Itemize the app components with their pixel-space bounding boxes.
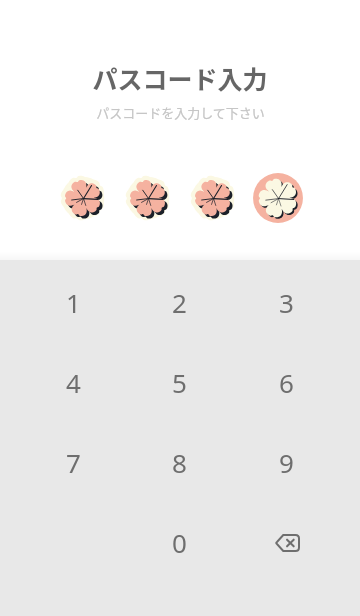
button[interactable]: 6 — [233, 342, 340, 422]
button[interactable]: Delete — [233, 502, 340, 582]
button[interactable]: 8 — [126, 422, 233, 502]
staticText: 0 — [172, 525, 187, 560]
button[interactable]: 2 — [126, 262, 233, 342]
staticText: 3 — [279, 285, 294, 320]
staticText: パスコードを入力して下さい — [96, 103, 265, 122]
staticText: 4 — [66, 365, 81, 400]
button[interactable]: 1 — [20, 262, 126, 342]
staticText: パスコード入力 — [92, 60, 268, 96]
staticText: 5 — [172, 365, 187, 400]
button[interactable]: 0 — [126, 502, 233, 582]
button[interactable]: 7 — [20, 422, 126, 502]
staticText: 1 — [66, 285, 81, 320]
staticText: 7 — [66, 445, 81, 480]
staticText: 6 — [279, 365, 294, 400]
staticText: 9 — [279, 445, 294, 480]
button[interactable]: 3 — [233, 262, 340, 342]
staticText: 8 — [172, 445, 187, 480]
staticText: 2 — [172, 285, 187, 320]
button[interactable]: 9 — [233, 422, 340, 502]
button[interactable]: 4 — [20, 342, 126, 422]
button[interactable]: 5 — [126, 342, 233, 422]
